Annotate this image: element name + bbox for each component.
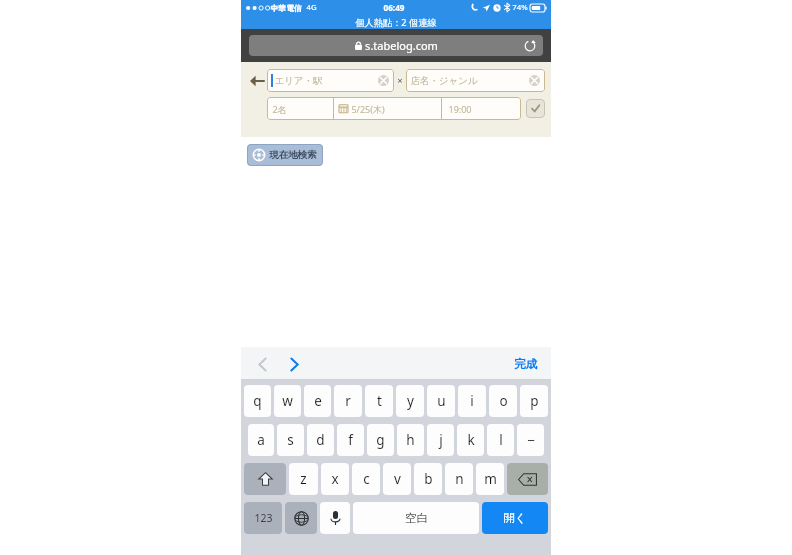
staticText: × xyxy=(397,74,403,87)
staticText: 完成 xyxy=(514,357,537,371)
button[interactable]: − xyxy=(517,424,544,456)
button[interactable]: c xyxy=(352,463,380,495)
button[interactable]: Clear text xyxy=(377,74,390,87)
button[interactable]: v xyxy=(383,463,411,495)
button[interactable]: x xyxy=(321,463,349,495)
staticText: p xyxy=(530,392,539,410)
button[interactable]: Dictation xyxy=(320,502,350,534)
button[interactable]: 19:00 xyxy=(442,97,521,120)
button[interactable]: a xyxy=(248,424,274,456)
button[interactable]: Clear text xyxy=(528,74,541,87)
staticText: v xyxy=(394,470,401,488)
button[interactable]: r xyxy=(334,385,362,417)
button[interactable]: h xyxy=(397,424,424,456)
button[interactable]: p xyxy=(520,385,548,417)
staticText: 74% xyxy=(512,2,528,13)
staticText: a xyxy=(257,431,265,449)
staticText: g xyxy=(376,431,385,449)
staticText: b xyxy=(424,470,433,488)
button[interactable]: 5/25(木) xyxy=(334,97,441,120)
button[interactable]: b xyxy=(414,463,442,495)
button[interactable]: u xyxy=(427,385,455,417)
staticText: 06:49 xyxy=(383,2,405,13)
staticText: j xyxy=(439,431,443,449)
button[interactable]: q xyxy=(244,385,271,417)
staticText: w xyxy=(282,392,293,410)
button[interactable]: エリア・駅 xyxy=(267,69,394,92)
staticText: y xyxy=(407,392,414,410)
button[interactable]: 開く xyxy=(482,502,548,534)
button[interactable]: Previous field xyxy=(251,353,273,375)
button[interactable]: f xyxy=(337,424,364,456)
button[interactable]: e xyxy=(304,385,331,417)
button[interactable]: 現在地検索 xyxy=(247,144,323,166)
button[interactable]: s.tabelog.com xyxy=(249,35,543,56)
button[interactable]: 123 xyxy=(244,502,282,534)
button[interactable]: Reload xyxy=(522,38,538,54)
button[interactable]: n xyxy=(445,463,473,495)
button[interactable]: Search option xyxy=(526,99,545,118)
staticText: i xyxy=(470,392,474,410)
button[interactable]: Next field xyxy=(283,353,305,375)
staticText: n xyxy=(455,470,464,488)
staticText: h xyxy=(406,431,415,449)
staticText: 中華電信 xyxy=(270,3,302,13)
button[interactable]: Backspace xyxy=(507,463,548,495)
staticText: t xyxy=(377,392,382,410)
staticText: 現在地検索 xyxy=(269,149,317,161)
staticText: m xyxy=(484,470,497,488)
staticText: e xyxy=(314,392,322,410)
button[interactable]: t xyxy=(365,385,393,417)
staticText: 空白 xyxy=(405,511,428,525)
staticText: u xyxy=(437,392,446,410)
button[interactable]: z xyxy=(289,463,318,495)
button[interactable]: Shift xyxy=(244,463,286,495)
button[interactable]: l xyxy=(487,424,514,456)
staticText: 5/25(木) xyxy=(351,103,385,115)
button[interactable]: 2名 xyxy=(267,97,333,120)
staticText: l xyxy=(499,431,503,449)
staticText: 個人熱點：2 個連線 xyxy=(355,16,437,29)
button[interactable]: m xyxy=(476,463,504,495)
staticText: k xyxy=(467,431,475,449)
staticText: r xyxy=(345,392,351,410)
button[interactable]: d xyxy=(307,424,334,456)
button[interactable]: g xyxy=(367,424,394,456)
staticText: z xyxy=(300,470,307,488)
staticText: 4G xyxy=(306,2,317,13)
staticText: d xyxy=(316,431,325,449)
staticText: o xyxy=(499,392,508,410)
button[interactable]: 空白 xyxy=(353,502,479,534)
staticText: f xyxy=(348,431,353,449)
button[interactable]: o xyxy=(489,385,517,417)
button[interactable]: w xyxy=(274,385,301,417)
button[interactable]: i xyxy=(458,385,486,417)
staticText: x xyxy=(331,470,339,488)
button[interactable]: y xyxy=(396,385,424,417)
staticText: 19:00 xyxy=(448,103,472,115)
staticText: 2名 xyxy=(272,103,287,115)
staticText: q xyxy=(253,392,262,410)
button[interactable]: s xyxy=(277,424,304,456)
button[interactable]: k xyxy=(457,424,484,456)
staticText: s xyxy=(287,431,294,449)
staticText: 開く xyxy=(503,511,527,525)
button[interactable]: Switch keyboard xyxy=(285,502,317,534)
staticText: c xyxy=(363,470,370,488)
staticText: − xyxy=(527,431,535,449)
staticText: 123 xyxy=(254,511,273,525)
staticText: エリア・駅 xyxy=(274,75,323,87)
button[interactable]: Back xyxy=(246,69,267,92)
button[interactable]: 完成 xyxy=(510,353,541,375)
button[interactable]: 店名・ジャンル xyxy=(406,69,545,92)
staticText: 店名・ジャンル xyxy=(410,75,478,87)
staticText: s.tabelog.com xyxy=(365,38,438,53)
button[interactable]: j xyxy=(427,424,454,456)
